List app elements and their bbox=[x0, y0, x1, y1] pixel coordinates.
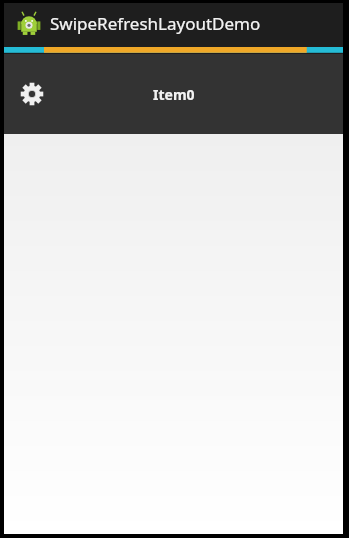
button[interactable]: Settings bbox=[10, 72, 54, 116]
staticText: SwipeRefreshLayoutDemo bbox=[50, 12, 261, 35]
button[interactable]: Item0 bbox=[137, 77, 211, 112]
staticText: Item0 bbox=[153, 85, 195, 104]
